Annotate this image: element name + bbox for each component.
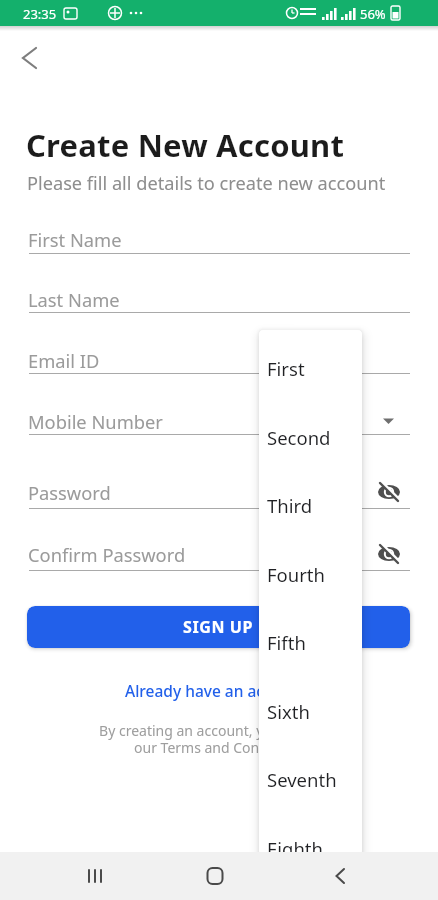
button[interactable]: Mobile Number: [27, 409, 410, 436]
button[interactable]: Second: [259, 403, 362, 471]
staticText: By creating an account, you agree to our…: [99, 721, 339, 757]
staticText: Email ID: [28, 348, 100, 373]
button[interactable]: Sixth: [259, 677, 362, 745]
staticText: 56%: [360, 5, 386, 23]
staticText: 23:35: [23, 5, 57, 23]
button[interactable]: First Name: [27, 227, 410, 255]
button[interactable]: SIGN UP: [27, 606, 410, 648]
staticText: SIGN UP: [183, 616, 254, 638]
staticText: Fourth: [267, 562, 325, 587]
button[interactable]: Third: [259, 471, 362, 539]
staticText: Eighth: [267, 836, 323, 855]
button[interactable]: First: [259, 334, 362, 402]
button[interactable]: Password: [27, 480, 410, 510]
staticText: First Name: [28, 227, 122, 252]
staticText: Please fill all details to create new ac…: [27, 171, 386, 196]
button[interactable]: Seventh: [259, 745, 362, 813]
staticText: Create New Account: [26, 124, 345, 166]
staticText: Confirm Password: [28, 542, 186, 567]
staticText: Mobile Number: [28, 409, 163, 434]
staticText: Last Name: [28, 287, 120, 312]
button[interactable]: [377, 481, 403, 505]
button[interactable]: Last Name: [27, 287, 410, 314]
staticText: Second: [267, 425, 331, 450]
staticText: Already have an account?: [125, 680, 314, 701]
button[interactable]: Already have an account?: [0, 678, 438, 702]
staticText: First: [267, 356, 305, 381]
button[interactable]: [75, 856, 115, 896]
staticText: Fifth: [267, 630, 306, 655]
button[interactable]: Eighth: [259, 814, 362, 855]
button[interactable]: Fourth: [259, 540, 362, 608]
button[interactable]: Fifth: [259, 608, 362, 676]
button[interactable]: [377, 543, 403, 567]
button[interactable]: Confirm Password: [27, 542, 410, 572]
button[interactable]: [14, 42, 46, 74]
button[interactable]: Email ID: [27, 348, 410, 375]
button[interactable]: [195, 856, 235, 896]
staticText: Sixth: [267, 699, 310, 724]
staticText: Third: [267, 493, 313, 518]
staticText: Password: [28, 480, 111, 505]
button[interactable]: [320, 856, 360, 896]
staticText: Seventh: [267, 767, 337, 792]
